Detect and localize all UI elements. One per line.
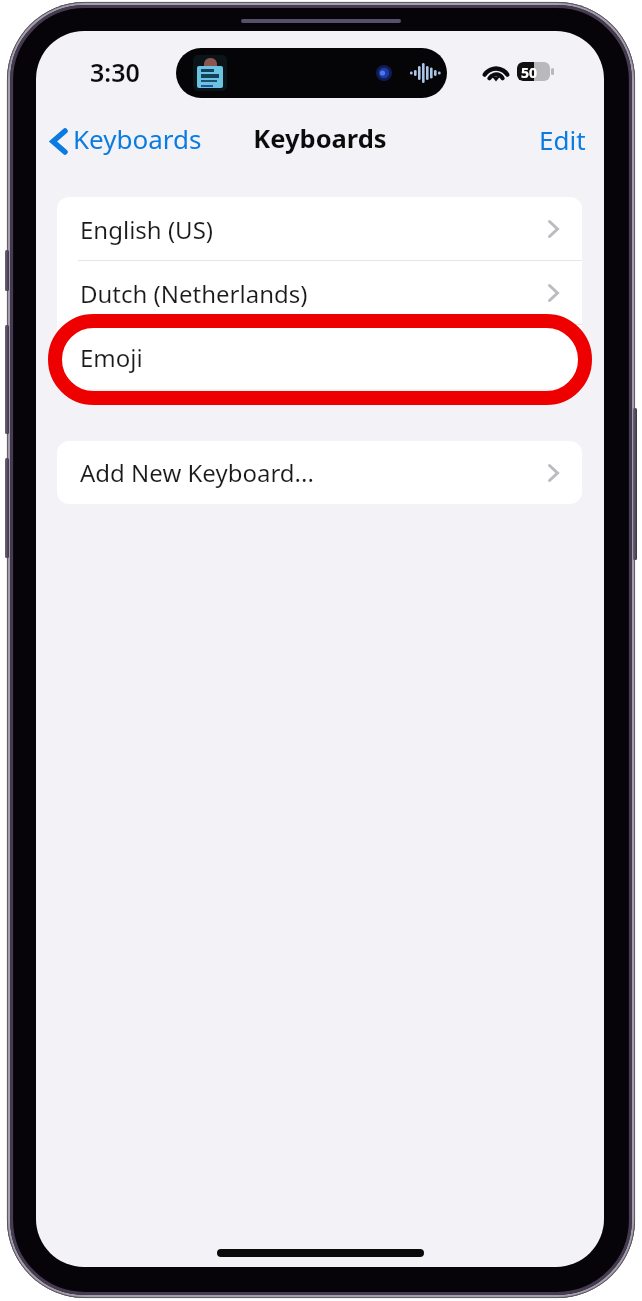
staticText: Keyboards [73, 121, 202, 156]
button[interactable]: Edit [523, 115, 602, 163]
staticText: Emoji [80, 341, 143, 374]
staticText: Keyboards [36, 121, 604, 156]
staticText: Add New Keyboard... [80, 456, 314, 489]
staticText: 3:30 [90, 55, 140, 89]
button[interactable]: Back to Keyboards [40, 117, 206, 165]
button[interactable]: Add New Keyboard... [57, 441, 582, 504]
staticText: English (US) [80, 213, 214, 246]
staticText: Dutch (Netherlands) [80, 277, 308, 310]
staticText: 50 [521, 63, 538, 81]
staticText: Edit [539, 122, 586, 157]
button[interactable]: Dutch (Netherlands) [57, 261, 582, 325]
button[interactable]: Emoji [57, 325, 582, 389]
button[interactable]: English (US) [57, 197, 582, 261]
